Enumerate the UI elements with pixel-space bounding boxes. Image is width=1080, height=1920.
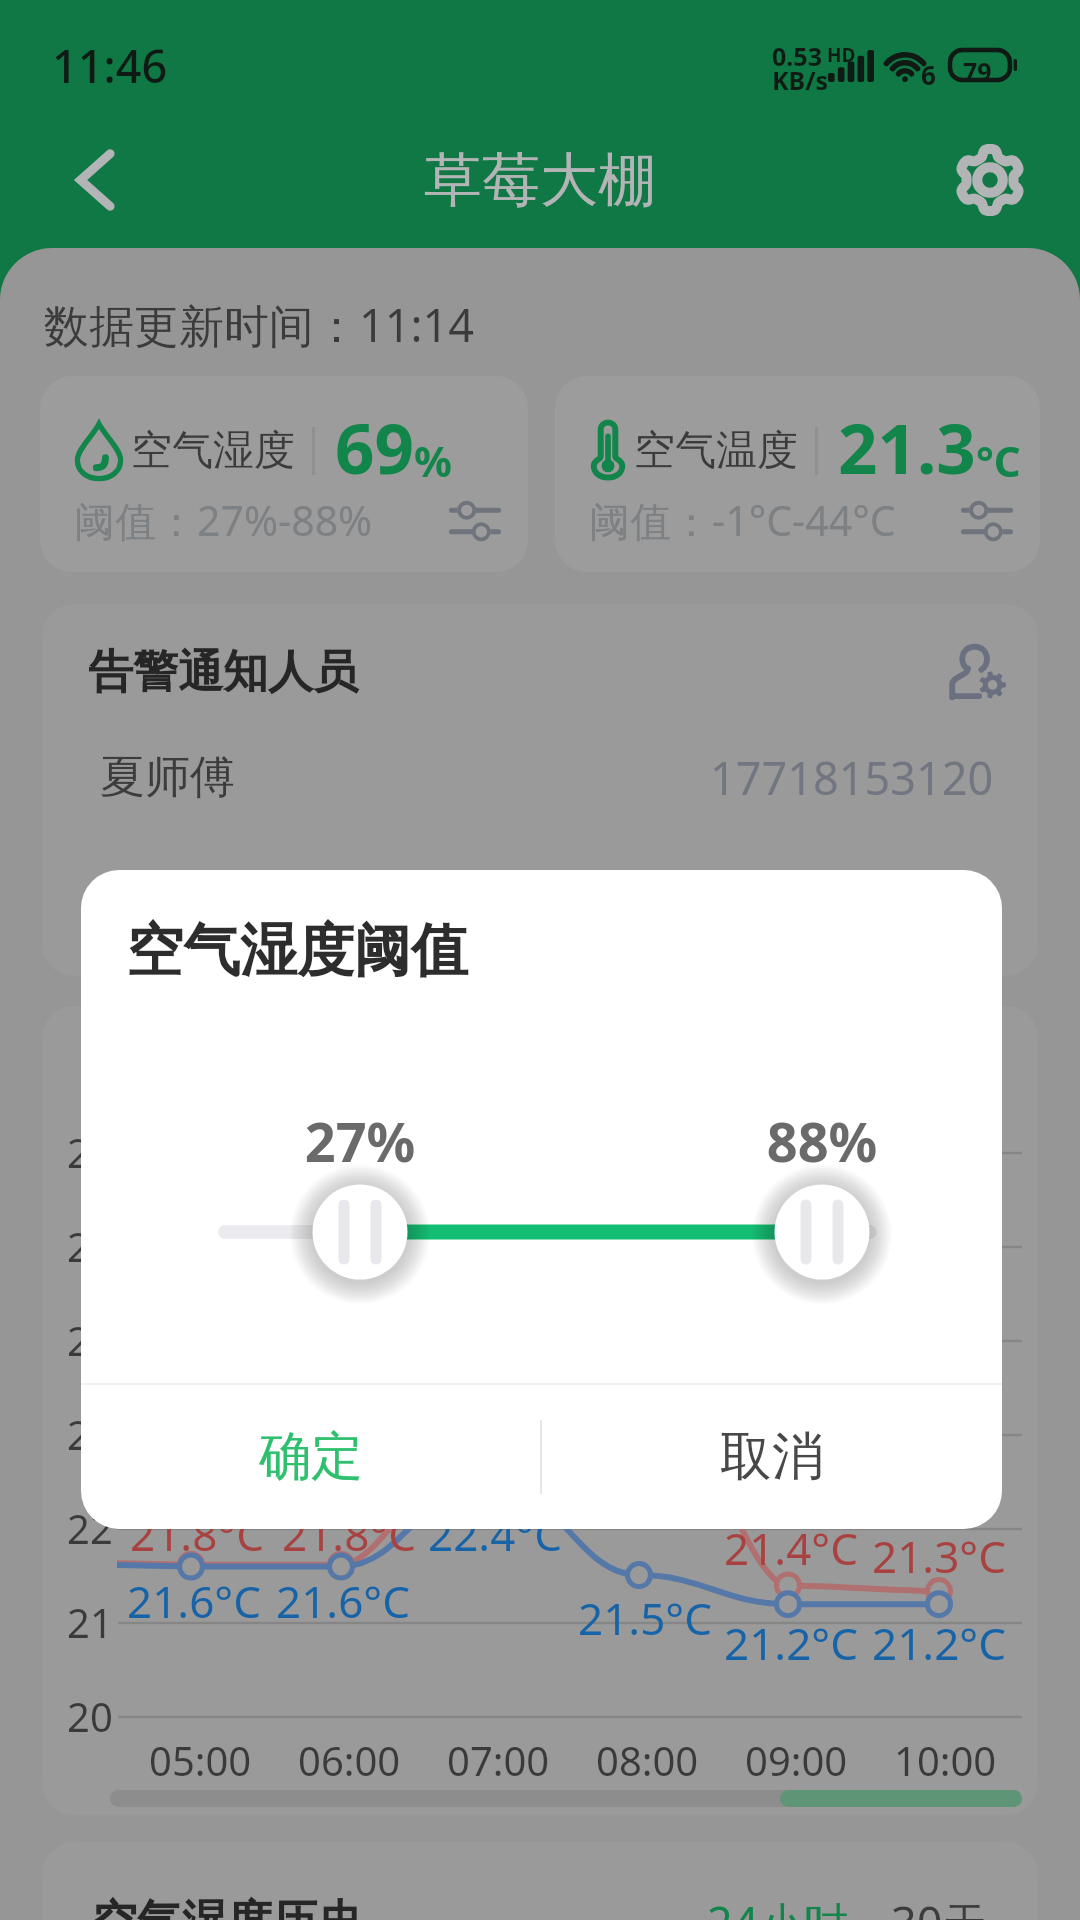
staticText: 空气湿度历史: [92, 1894, 362, 1920]
staticText: 21.6°C: [127, 1571, 261, 1631]
button[interactable]: Settings: [942, 132, 1038, 228]
staticText: %: [414, 432, 452, 489]
staticText: 草莓大棚: [424, 144, 656, 217]
staticText: KB/s: [772, 63, 829, 97]
staticText: 69: [335, 400, 414, 494]
staticText: 26: [67, 1125, 113, 1179]
staticText: 21.5°C: [578, 1588, 712, 1648]
staticText: 21.6°C: [276, 1571, 410, 1631]
staticText: 21.2°C: [872, 1613, 1006, 1673]
staticText: 空气湿度: [131, 425, 295, 477]
staticText: 0.53: [772, 39, 822, 73]
button[interactable]: Edit notification contacts: [943, 637, 1013, 707]
staticText: 阈值：27%-88%: [74, 492, 373, 548]
staticText: 21: [67, 1595, 113, 1649]
staticText: 10:00: [894, 1733, 997, 1787]
staticText: 79: [963, 54, 992, 88]
staticText: 22: [67, 1501, 113, 1555]
staticText: 夏师傅: [100, 749, 235, 806]
staticText: 22.4°C: [428, 1504, 562, 1564]
staticText: 08:00: [596, 1733, 699, 1787]
staticText: 21.4°C: [724, 1518, 858, 1578]
staticText: 阈值：-1°C-44°C: [589, 492, 896, 548]
staticText: 取消: [720, 1424, 824, 1490]
staticText: 06:00: [298, 1733, 401, 1787]
staticText: 告警通知人员: [88, 644, 358, 701]
staticText: 05:00: [149, 1733, 252, 1787]
button[interactable]: Back: [48, 132, 144, 228]
staticText: 6: [921, 57, 936, 92]
staticText: 21.3°C: [872, 1526, 1006, 1586]
staticText: 24小时: [707, 1892, 849, 1920]
staticText: 21.2°C: [724, 1613, 858, 1673]
staticText: 30天: [891, 1892, 988, 1920]
staticText: 11:46: [52, 35, 168, 96]
staticText: 07:00: [447, 1733, 550, 1787]
button[interactable]: 确定: [81, 1385, 540, 1529]
staticText: 数据更新时间：11:14: [44, 294, 475, 355]
staticText: 确定: [259, 1424, 363, 1490]
button[interactable]: 告警通知人员: [42, 604, 1038, 976]
button[interactable]: Adjust threshold: [442, 487, 508, 553]
staticText: 20: [67, 1689, 113, 1743]
staticText: 25: [67, 1219, 113, 1273]
button[interactable]: 取消: [542, 1385, 1002, 1529]
button[interactable]: Adjust threshold: [954, 487, 1020, 553]
staticText: 空气温度: [634, 425, 798, 477]
staticText: 88%: [722, 1104, 922, 1178]
staticText: 空气湿度阈值: [126, 915, 468, 987]
staticText: 21.3: [838, 400, 976, 494]
staticText: 09:00: [745, 1733, 848, 1787]
staticText: 21.8°C: [282, 1504, 416, 1564]
staticText: 23: [67, 1407, 113, 1461]
staticText: 24: [67, 1313, 113, 1367]
button[interactable]: 空气温度: [555, 376, 1040, 572]
button[interactable]: 空气湿度: [40, 376, 528, 572]
staticText: 21.8°C: [130, 1504, 264, 1564]
staticText: °C: [976, 432, 1021, 489]
staticText: 27%: [260, 1104, 460, 1178]
staticText: 17718153120: [710, 747, 994, 808]
staticText: HD: [827, 42, 856, 68]
